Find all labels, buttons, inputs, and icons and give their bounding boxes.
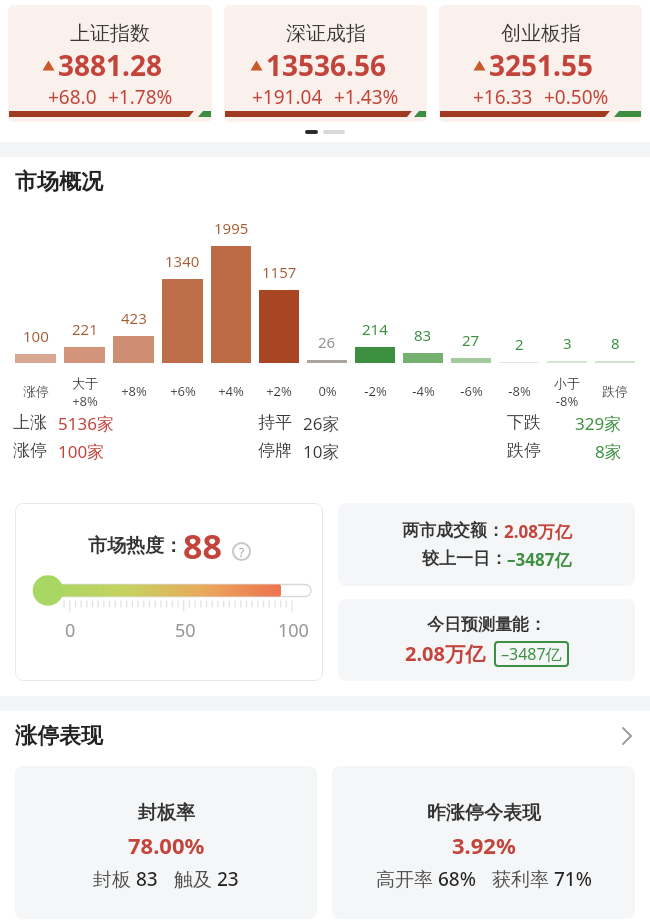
staticText: -4%: [412, 382, 435, 400]
staticText: 市场概况: [15, 168, 103, 196]
staticText: 2: [515, 334, 524, 354]
staticText: 较上一日：: [422, 548, 507, 569]
staticText: 27: [462, 330, 480, 350]
staticText: 高开率: [376, 866, 438, 892]
staticText: +1.78%: [108, 84, 173, 110]
staticText: 触及: [174, 866, 217, 892]
staticText: 2.08万亿: [504, 520, 572, 543]
staticText: 100: [278, 618, 309, 643]
staticText: +1.43%: [334, 84, 399, 110]
staticText: 下跌: [507, 412, 541, 433]
staticText: 涨停: [13, 440, 47, 461]
staticText: 今日预测量能：: [427, 614, 546, 635]
staticText: 深证成指: [286, 21, 366, 46]
staticText: 3251.55: [489, 46, 593, 84]
staticText: 获利率: [492, 866, 554, 892]
staticText: 83: [136, 866, 158, 892]
staticText: 封板率: [138, 801, 195, 825]
staticText: 停牌: [258, 440, 292, 461]
staticText: –3487亿: [507, 548, 572, 571]
staticText: 329家: [575, 412, 622, 435]
staticText: 78.00%: [128, 830, 205, 860]
staticText: 83: [414, 325, 432, 345]
staticText: 13536.56: [266, 46, 386, 84]
button[interactable]: 上证指数: [8, 5, 212, 122]
staticText: 8: [611, 333, 620, 353]
staticText: -2%: [364, 382, 387, 400]
staticText: 0%: [318, 382, 337, 400]
staticText: 26: [318, 332, 336, 352]
staticText: 大于 +8%: [72, 375, 98, 407]
staticText: -8%: [508, 382, 531, 400]
staticText: 2.08万亿: [405, 640, 485, 667]
staticText: 423: [121, 308, 147, 328]
staticText: 88: [183, 523, 222, 569]
button[interactable]: 创业板指: [439, 5, 642, 122]
staticText: 3.92%: [452, 830, 516, 860]
button[interactable]: 涨停表现: [15, 722, 635, 750]
staticText: 100: [23, 326, 49, 346]
staticText: ?: [239, 544, 245, 560]
staticText: 71%: [554, 866, 592, 892]
staticText: 5136家: [58, 412, 114, 435]
staticText: -6%: [460, 382, 483, 400]
staticText: 214: [362, 319, 388, 339]
staticText: +8%: [121, 382, 147, 400]
staticText: 市场热度：: [88, 534, 183, 558]
staticText: 创业板指: [501, 21, 581, 46]
staticText: 221: [72, 319, 98, 339]
button[interactable]: 市场热度：: [15, 503, 323, 681]
staticText: 1157: [262, 262, 297, 282]
staticText: +191.04: [252, 84, 323, 110]
staticText: 100家: [58, 440, 105, 463]
staticText: +2%: [266, 382, 292, 400]
button[interactable]: 昨涨停今表现: [332, 766, 635, 919]
button[interactable]: 两市成交额：: [338, 503, 635, 586]
button[interactable]: 封板率: [15, 766, 317, 919]
staticText: 0: [65, 618, 76, 643]
staticText: +16.33: [473, 84, 533, 110]
staticText: +0.50%: [544, 84, 609, 110]
staticText: 持平: [258, 412, 292, 433]
staticText: 50: [175, 618, 196, 643]
staticText: 1340: [165, 251, 200, 271]
staticText: 两市成交额：: [402, 520, 504, 541]
staticText: 小于 -8%: [554, 375, 580, 407]
staticText: 跌停: [507, 440, 541, 461]
staticText: +6%: [170, 382, 196, 400]
staticText: 上证指数: [70, 21, 150, 46]
staticText: 10家: [303, 440, 340, 463]
staticText: –3487亿: [501, 643, 562, 665]
staticText: 26家: [303, 412, 340, 435]
staticText: +68.0: [48, 84, 97, 110]
staticText: 封板: [93, 866, 136, 892]
staticText: 涨停表现: [15, 722, 103, 750]
staticText: 涨停: [23, 383, 49, 399]
staticText: +4%: [218, 382, 244, 400]
button[interactable]: 今日预测量能：: [338, 599, 635, 681]
staticText: 68%: [438, 866, 476, 892]
staticText: 3881.28: [58, 46, 162, 84]
staticText: 1995: [214, 218, 249, 238]
button[interactable]: 深证成指: [224, 5, 427, 122]
staticText: 23: [217, 866, 239, 892]
staticText: 跌停: [602, 383, 628, 399]
staticText: 3: [563, 333, 572, 353]
staticText: 上涨: [13, 412, 47, 433]
staticText: 昨涨停今表现: [427, 801, 541, 825]
staticText: 8家: [595, 440, 622, 463]
